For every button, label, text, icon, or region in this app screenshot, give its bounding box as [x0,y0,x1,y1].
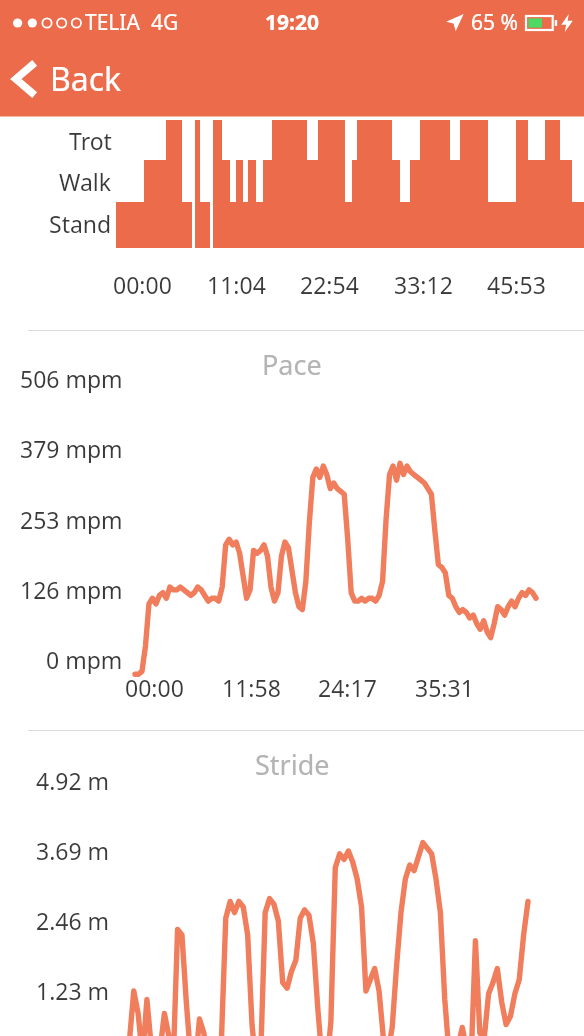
staticText: 65 % [471,8,518,37]
staticText: 11:58 [222,672,281,703]
staticText: Back [50,57,122,101]
staticText: Stand [49,208,112,239]
other: Back [14,61,37,97]
staticText: TELIA [85,8,140,37]
staticText: 0 mpm [46,644,123,674]
staticText: 33:12 [394,269,453,300]
staticText: 4.92 m [36,765,110,795]
staticText: 4G [151,8,179,37]
staticText: 22:54 [300,269,359,300]
staticText: 506 mpm [20,363,123,393]
staticText: 00:00 [125,672,184,703]
staticText: 126 mpm [20,574,123,604]
staticText: Stride [255,746,330,783]
staticText: Pace [262,346,322,383]
staticText: 45:53 [487,269,546,300]
staticText: Walk [59,166,112,197]
staticText: 35:31 [415,672,474,703]
staticText: 1.23 m [36,975,110,1005]
staticText: 11:04 [207,269,266,300]
staticText: Trot [69,125,112,156]
staticText: 3.69 m [36,835,110,865]
staticText: 00:00 [113,269,172,300]
staticText: 253 mpm [20,504,123,534]
button[interactable]: Back [0,44,584,114]
staticText: 19:20 [265,8,319,37]
staticText: 379 mpm [20,433,123,463]
staticText: 24:17 [318,672,377,703]
staticText: 2.46 m [36,905,110,935]
